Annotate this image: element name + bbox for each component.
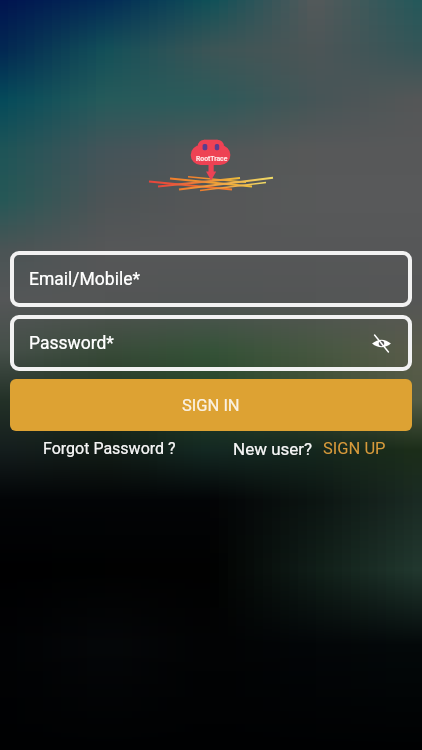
button[interactable]: SIGN IN xyxy=(10,379,412,431)
button[interactable]: Show password xyxy=(368,330,394,356)
button[interactable]: SIGN UP xyxy=(323,439,386,458)
staticText: Email/Mobile* xyxy=(29,269,140,290)
staticText: New user? xyxy=(233,439,313,459)
staticText: Forgot Password ? xyxy=(43,439,176,458)
button[interactable]: Email/Mobile* xyxy=(10,251,412,307)
staticText: Password* xyxy=(29,333,114,354)
staticText: RootTrace xyxy=(196,155,228,163)
button[interactable]: Forgot Password ? xyxy=(43,439,176,458)
button[interactable]: Password* xyxy=(10,315,412,371)
staticText: SIGN IN xyxy=(182,396,240,415)
staticText: SIGN UP xyxy=(323,439,386,458)
